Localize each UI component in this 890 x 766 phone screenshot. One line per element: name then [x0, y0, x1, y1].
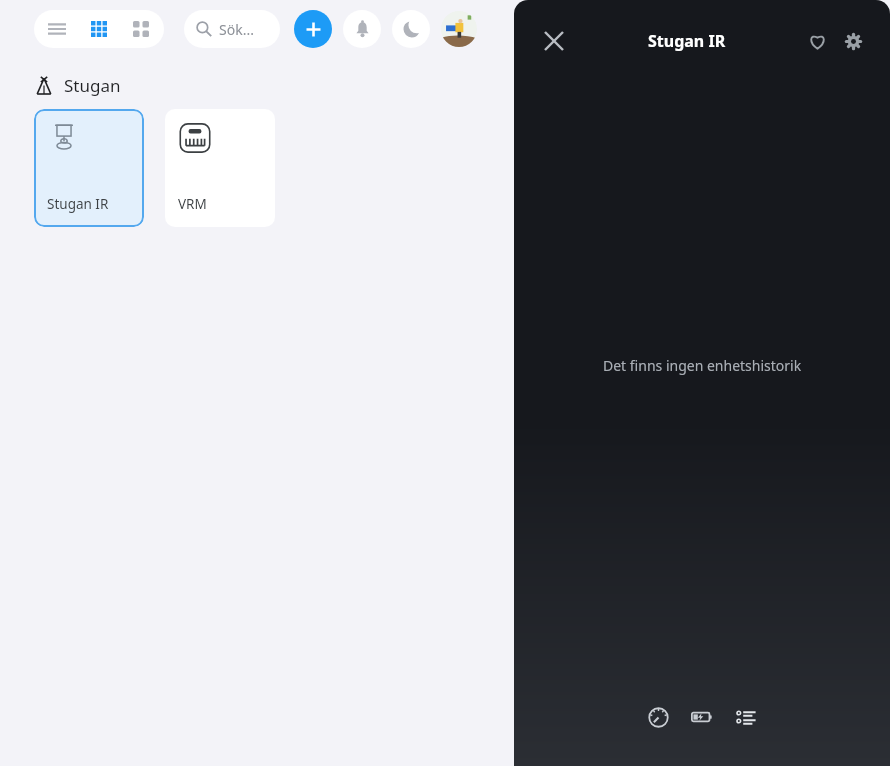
button[interactable]: Attributes — [729, 700, 763, 734]
button[interactable]: Notifications — [343, 10, 381, 48]
button[interactable]: List view — [38, 10, 76, 48]
button[interactable]: VRM — [165, 109, 275, 227]
button[interactable]: Profile — [441, 11, 477, 47]
staticText: Stugan IR — [47, 195, 109, 213]
button[interactable]: Large grid view — [122, 10, 160, 48]
button[interactable]: Stugan — [34, 74, 121, 97]
button[interactable]: Favorite — [800, 24, 834, 58]
staticText: Sök... — [219, 20, 254, 39]
staticText: VRM — [178, 195, 207, 213]
staticText: Stugan IR — [648, 30, 726, 52]
button[interactable]: Settings — [836, 24, 870, 58]
staticText: Stugan — [64, 74, 121, 97]
button[interactable]: Battery — [685, 700, 719, 734]
button[interactable]: Close — [534, 21, 574, 61]
button[interactable]: Grid view — [80, 10, 118, 48]
button[interactable]: Dark mode — [392, 10, 430, 48]
staticText: Det finns ingen enhetshistorik — [603, 356, 802, 375]
button[interactable]: Sök... — [184, 10, 280, 48]
button[interactable]: Stugan IR — [34, 109, 144, 227]
button[interactable]: Sensor — [641, 700, 675, 734]
button[interactable]: Add — [294, 10, 332, 48]
